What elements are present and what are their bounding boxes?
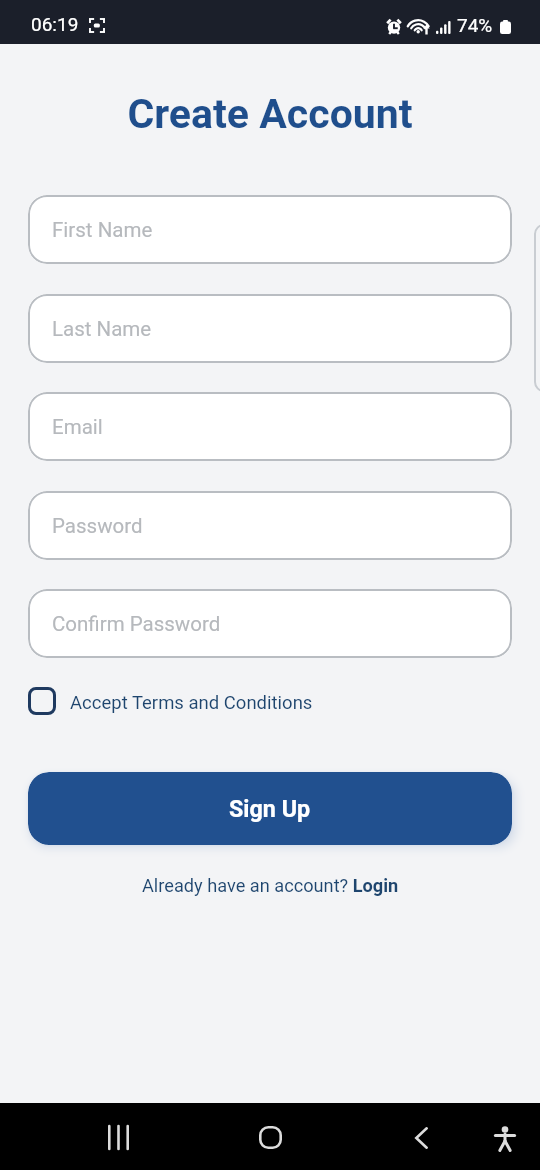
- staticText: Accept Terms and Conditions: [70, 692, 313, 714]
- button[interactable]: Last Name: [28, 294, 512, 363]
- staticText: Password: [52, 514, 143, 538]
- button[interactable]: Back: [387, 1103, 455, 1170]
- button[interactable]: Recents: [84, 1103, 152, 1170]
- button[interactable]: Home: [236, 1103, 304, 1170]
- button[interactable]: Email: [28, 392, 512, 461]
- staticText: Email: [52, 415, 103, 439]
- button[interactable]: Accept Terms and Conditions: [28, 686, 313, 715]
- staticText: Confirm Password: [52, 612, 221, 636]
- staticText: 06:19: [31, 13, 79, 35]
- staticText: Create Account: [0, 90, 540, 138]
- button[interactable]: Accessibility: [475, 1103, 535, 1170]
- button[interactable]: Sign Up: [28, 772, 512, 845]
- button[interactable]: Password: [28, 491, 512, 560]
- button[interactable]: First Name: [28, 195, 512, 264]
- staticText: Sign Up: [229, 795, 311, 822]
- button[interactable]: Confirm Password: [28, 589, 512, 658]
- staticText: Last Name: [52, 317, 152, 341]
- button[interactable]: Already have an account? Login: [142, 875, 399, 896]
- staticText: First Name: [52, 218, 153, 242]
- staticText: 74%: [457, 14, 493, 36]
